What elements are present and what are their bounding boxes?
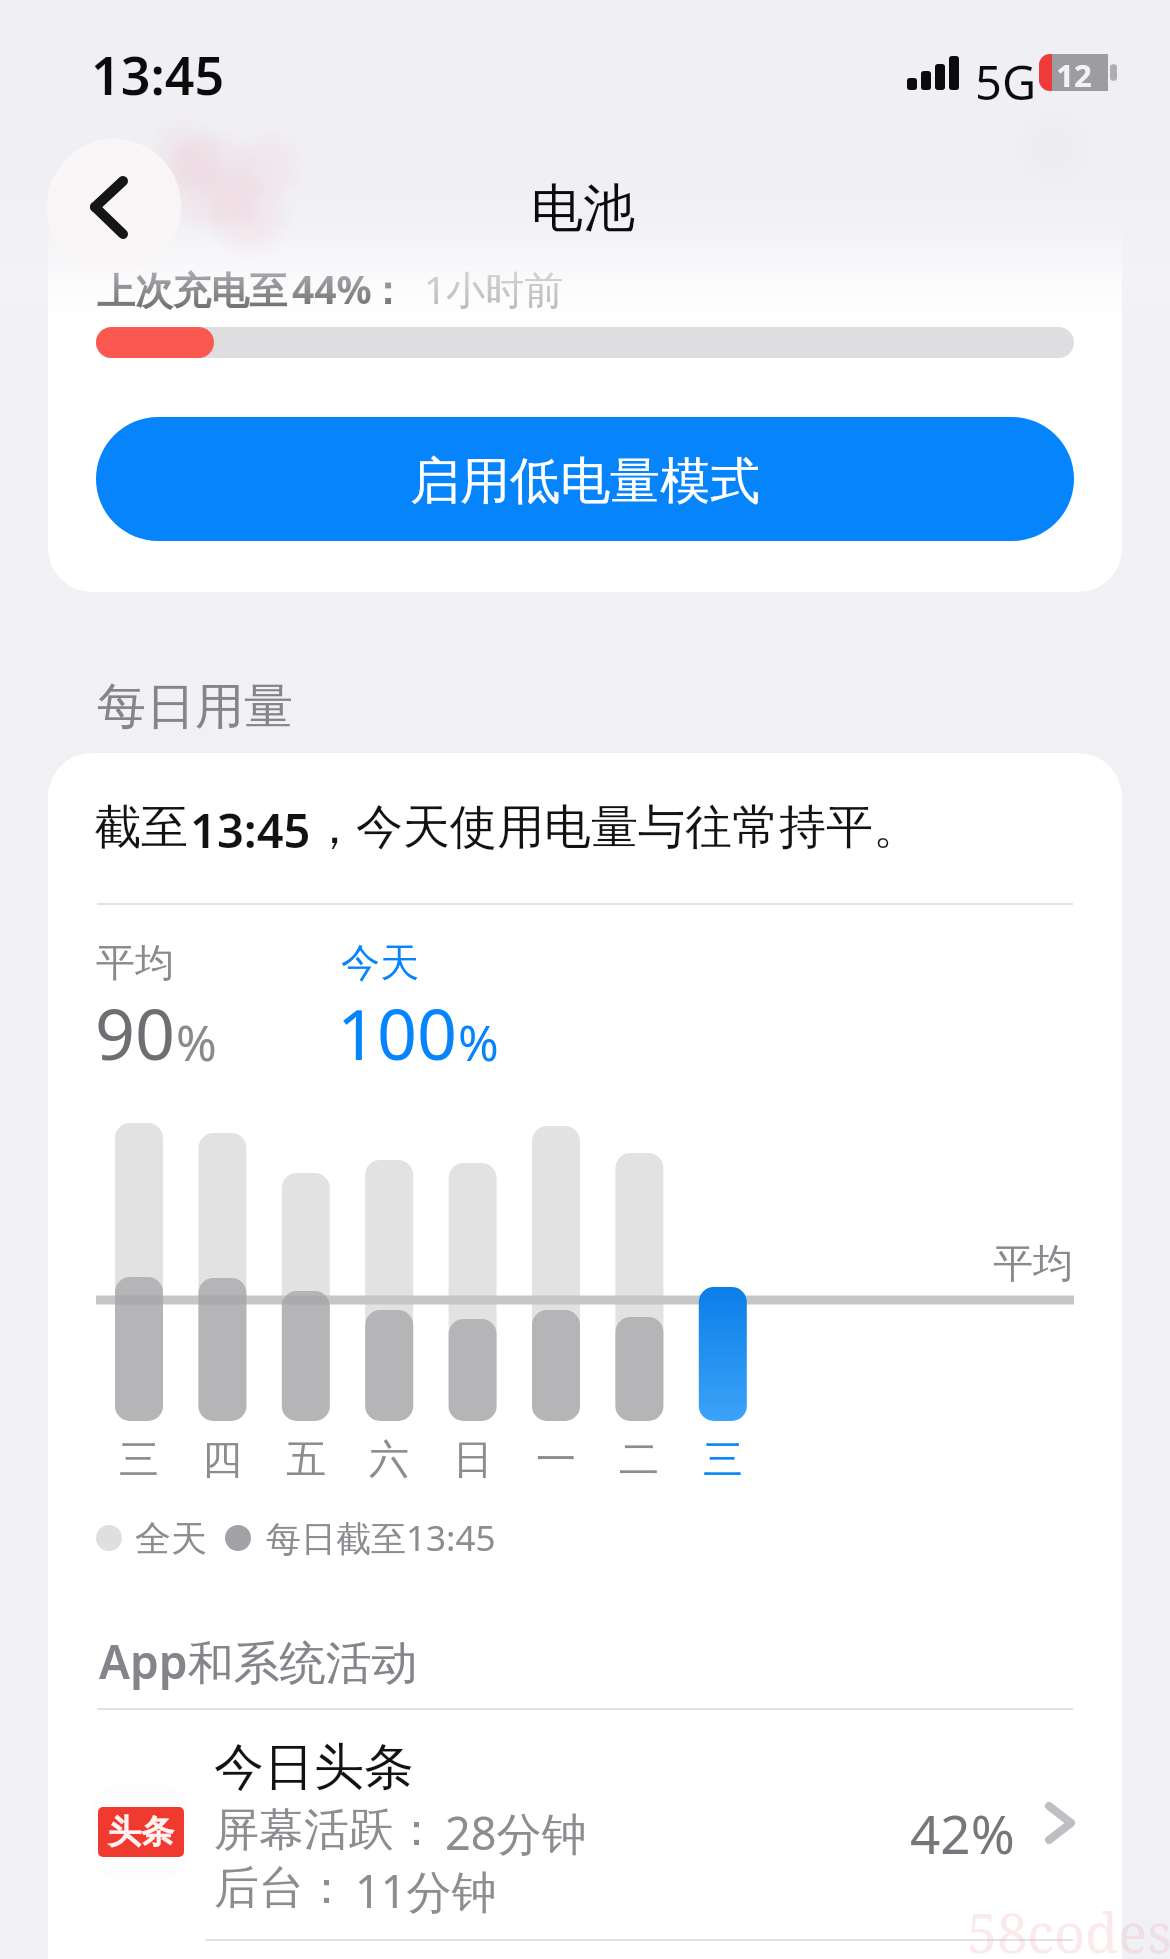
staticText: 六 — [369, 1434, 409, 1484]
staticText: 1小时前 — [424, 262, 564, 315]
staticText: 电池 — [531, 176, 635, 242]
staticText: 每日用量 — [97, 676, 293, 738]
staticText: 13:45 — [190, 798, 311, 862]
button[interactable]: 头条 — [48, 1710, 1122, 1940]
button[interactable]: Back — [47, 139, 181, 273]
staticText: % — [458, 1009, 499, 1076]
staticText: 三 — [119, 1434, 159, 1484]
staticText: 11分钟 — [355, 1860, 497, 1921]
staticText: 头条 — [108, 1811, 174, 1853]
staticText: App和系统活动 — [99, 1630, 418, 1693]
staticText: 三 — [703, 1434, 743, 1484]
staticText: 五 — [286, 1434, 326, 1484]
staticText: 今天 — [341, 938, 419, 987]
staticText: 今天使用电量与往常持平。 — [356, 798, 920, 857]
staticText: 屏幕活跃： — [214, 1802, 439, 1859]
staticText: 今日头条 — [214, 1736, 414, 1799]
staticText: ， — [311, 798, 358, 857]
staticText: 平均 — [96, 938, 174, 987]
staticText: 90 — [95, 985, 176, 1080]
staticText: 100 — [337, 985, 458, 1080]
staticText: 每日截至13:45 — [266, 1514, 496, 1562]
staticText: 上次充电至 — [97, 267, 287, 315]
staticText: 四 — [202, 1434, 242, 1484]
staticText: 13:45 — [91, 39, 225, 110]
staticText: 5G — [975, 50, 1037, 114]
staticText: 28分钟 — [445, 1802, 587, 1863]
staticText: ： — [368, 266, 407, 315]
staticText: 42% — [910, 1797, 1015, 1869]
staticText: 启用低电量模式 — [410, 450, 760, 513]
staticText: 44% — [292, 262, 372, 315]
staticText: 一 — [536, 1434, 576, 1484]
staticText: 全天 — [135, 1516, 207, 1561]
staticText: 平均 — [993, 1238, 1073, 1288]
staticText: 后台： — [214, 1860, 349, 1917]
staticText: 日 — [453, 1434, 493, 1484]
staticText: 12 — [1039, 54, 1109, 91]
staticText: % — [176, 1009, 217, 1076]
button[interactable]: 启用低电量模式 — [96, 417, 1074, 541]
staticText: 截至 — [94, 798, 188, 857]
staticText: 58codes — [967, 1895, 1170, 1959]
staticText: 二 — [619, 1434, 659, 1484]
